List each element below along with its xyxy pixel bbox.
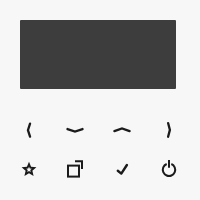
button[interactable]: Right	[149, 110, 189, 150]
button[interactable]: Favourite	[9, 149, 49, 189]
button[interactable]: Down	[55, 110, 95, 150]
button[interactable]: Apps	[55, 149, 95, 189]
button[interactable]: Select	[102, 149, 142, 189]
button[interactable]: Power	[149, 149, 189, 189]
button[interactable]: Left	[9, 110, 49, 150]
button[interactable]: Up	[102, 110, 142, 150]
